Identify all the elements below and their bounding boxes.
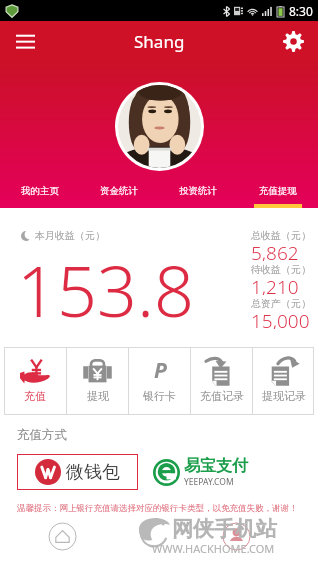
- button[interactable]: 充值记录: [191, 347, 252, 415]
- button[interactable]: 资金统计: [79, 182, 158, 208]
- button[interactable]: Account: [222, 522, 251, 551]
- staticText: 充值方式: [17, 427, 67, 443]
- staticText: 15,000: [251, 308, 310, 329]
- button[interactable]: Home: [48, 522, 77, 551]
- staticText: 资金统计: [100, 185, 138, 197]
- staticText: Shang: [134, 30, 185, 53]
- staticText: 易宝支付: [184, 456, 248, 476]
- button[interactable]: 易宝支付: [153, 454, 248, 490]
- staticText: 8:30: [289, 3, 313, 19]
- staticText: 1,210: [251, 274, 299, 295]
- button[interactable]: Profile photo: [115, 82, 204, 171]
- staticText: 本月收益（元）: [35, 229, 105, 242]
- button[interactable]: 我的主页: [0, 182, 79, 208]
- button[interactable]: 微钱包: [17, 454, 138, 490]
- staticText: 微钱包: [66, 461, 120, 484]
- button[interactable]: 提现: [67, 347, 128, 415]
- staticText: 投资统计: [179, 185, 217, 197]
- staticText: P: [154, 356, 167, 385]
- staticText: YEEPAY.COM: [184, 476, 234, 488]
- staticText: 我的主页: [21, 185, 59, 197]
- button[interactable]: P: [129, 347, 190, 415]
- staticText: 153.8: [17, 242, 194, 337]
- staticText: 充值记录: [200, 389, 244, 403]
- staticText: 总收益（元）: [251, 229, 311, 242]
- staticText: 提现记录: [262, 389, 306, 403]
- button[interactable]: 提现记录: [253, 347, 314, 415]
- button[interactable]: 充值提现: [238, 182, 318, 208]
- staticText: 提现: [87, 389, 109, 403]
- staticText: 5,862: [251, 240, 299, 261]
- button[interactable]: 充值: [4, 347, 66, 415]
- button[interactable]: Settings: [276, 24, 310, 58]
- staticText: 总资产（元）: [251, 297, 311, 310]
- staticText: 网侠手机站: [172, 516, 277, 542]
- staticText: 充值提现: [259, 185, 297, 197]
- staticText: 待收益（元）: [251, 263, 311, 276]
- staticText: WWW.HACKHOME.COM: [152, 541, 275, 556]
- button[interactable]: Menu: [8, 24, 42, 58]
- staticText: 温馨提示：网上银行充值请选择对应的银行卡类型，以免充值失败，谢谢！: [17, 503, 298, 514]
- staticText: 银行卡: [143, 389, 176, 403]
- button[interactable]: 投资统计: [158, 182, 238, 208]
- staticText: 充值: [24, 389, 46, 403]
